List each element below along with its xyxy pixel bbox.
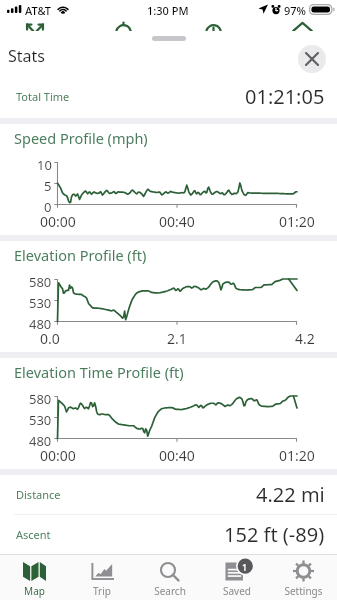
button[interactable]: Compass — [205, 22, 222, 31]
staticText: Elevation Profile (ft) — [14, 245, 147, 265]
staticText: 10 — [37, 156, 52, 174]
staticText: AT&T — [25, 3, 52, 18]
button[interactable]: Map layers — [292, 21, 313, 31]
staticText: 2.1 — [167, 329, 187, 347]
staticText: 480 — [29, 315, 52, 333]
staticText: Saved — [223, 584, 251, 598]
staticText: 580 — [29, 390, 52, 408]
button[interactable]: Expand map — [26, 24, 44, 31]
staticText: Settings — [284, 584, 323, 598]
staticText: 00:00 — [40, 212, 76, 230]
button[interactable]: Close — [298, 45, 326, 73]
staticText: Trip — [93, 584, 111, 598]
button[interactable]: Settings — [270, 555, 337, 600]
staticText: Elevation Time Profile (ft) — [14, 362, 184, 382]
staticText: 0.0 — [40, 329, 60, 347]
staticText: 1:30 PM — [147, 3, 189, 18]
staticText: 0 — [44, 198, 52, 216]
staticText: 00:00 — [40, 446, 76, 464]
staticText: Ascent — [16, 527, 51, 542]
button[interactable]: Total Time — [16, 75, 325, 118]
staticText: 4.2 — [295, 329, 315, 347]
staticText: Total Time — [16, 89, 70, 104]
staticText: Search — [154, 584, 186, 598]
staticText: 00:40 — [159, 446, 195, 464]
button[interactable]: Locate — [115, 22, 132, 31]
staticText: 530 — [29, 411, 52, 429]
staticText: 00:40 — [159, 212, 195, 230]
staticText: 01:20 — [279, 212, 315, 230]
staticText: Speed Profile (mph) — [14, 128, 148, 148]
button[interactable]: Distance — [16, 475, 325, 514]
button[interactable]: Ascent — [16, 515, 325, 554]
button[interactable]: Trip — [68, 555, 136, 600]
staticText: 152 ft (-89) — [224, 521, 325, 548]
button[interactable]: 1 — [203, 555, 270, 600]
staticText: Distance — [16, 487, 61, 502]
staticText: Stats — [8, 45, 45, 67]
staticText: 4.22 mi — [256, 481, 325, 508]
staticText: 01:20 — [279, 446, 315, 464]
staticText: Map — [24, 584, 45, 598]
staticText: 97% — [284, 3, 306, 18]
button[interactable]: Map — [0, 555, 68, 600]
staticText: 01:21:05 — [245, 83, 325, 110]
staticText: 580 — [29, 273, 52, 291]
staticText: 480 — [29, 432, 52, 450]
staticText: 1 — [242, 561, 248, 573]
staticText: 530 — [29, 294, 52, 312]
staticText: 5 — [44, 177, 52, 195]
button[interactable]: Search — [136, 555, 203, 600]
